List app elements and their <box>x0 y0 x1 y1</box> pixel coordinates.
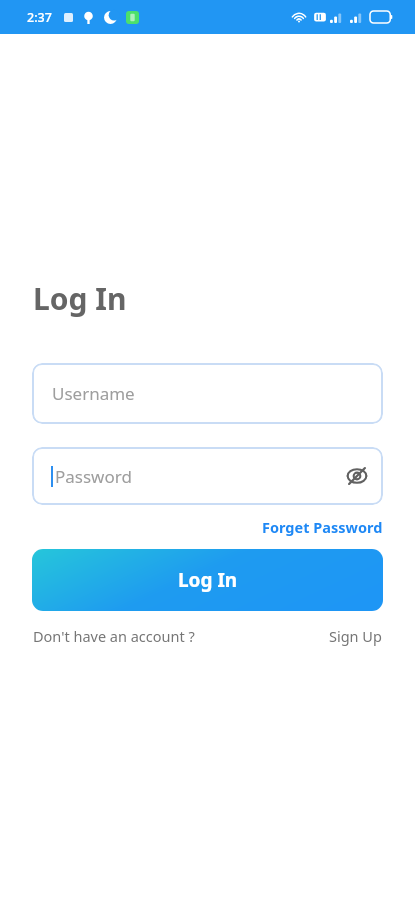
button[interactable]: Show password <box>335 454 379 498</box>
staticText: Sign Up <box>329 626 382 646</box>
button[interactable]: Username <box>32 363 383 424</box>
button[interactable]: Log In <box>32 549 383 611</box>
button[interactable]: Don't have an account ? <box>33 626 195 646</box>
button[interactable]: Forget Password <box>262 517 383 537</box>
staticText: Username <box>52 382 135 405</box>
staticText: Don't have an account ? <box>33 626 195 646</box>
staticText: Password <box>55 465 132 488</box>
button[interactable]: Sign Up <box>329 626 382 646</box>
button[interactable]: Password <box>32 447 383 505</box>
staticText: Log In <box>33 278 127 319</box>
staticText: Forget Password <box>262 517 383 537</box>
staticText: Log In <box>178 567 238 593</box>
staticText: 2:37 <box>27 9 52 26</box>
